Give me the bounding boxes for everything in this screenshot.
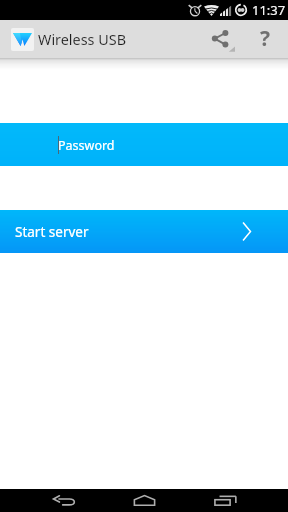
staticText: 11:37 <box>252 1 286 19</box>
button[interactable]: Home <box>122 489 166 512</box>
button[interactable]: Share <box>205 20 247 58</box>
button[interactable]: Start server <box>0 210 288 253</box>
staticText: Password <box>58 137 115 154</box>
button[interactable]: Back <box>42 489 86 512</box>
staticText: Start server <box>15 223 89 241</box>
staticText: ? <box>260 24 271 53</box>
staticText: Wireless USB <box>38 30 126 50</box>
button[interactable]: Help <box>247 20 283 58</box>
button[interactable]: Recent apps <box>203 489 247 512</box>
button[interactable]: Password <box>0 123 288 166</box>
